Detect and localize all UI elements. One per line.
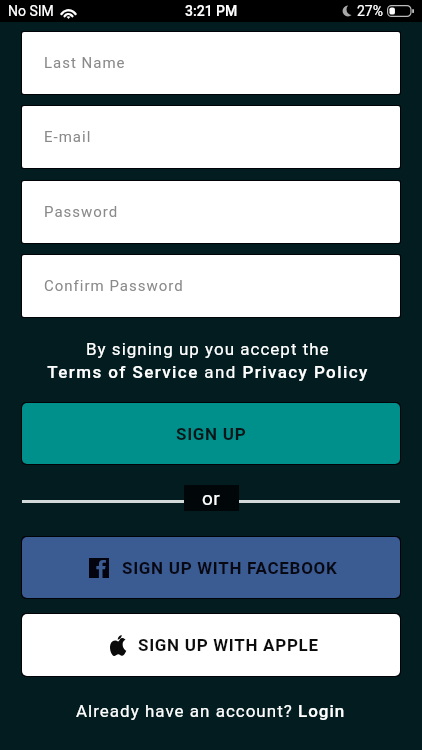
button[interactable]: Confirm Password	[22, 255, 400, 317]
staticText: SIGN UP WITH APPLE	[138, 635, 319, 655]
staticText: SIGN UP WITH FACEBOOK	[122, 558, 338, 578]
button[interactable]: Already have an account? Login	[76, 701, 346, 721]
staticText: No SIM	[8, 3, 54, 19]
button[interactable]: SIGN UP WITH FACEBOOK	[22, 537, 400, 598]
staticText: By signing up you accept the	[86, 339, 330, 359]
staticText: or	[202, 487, 221, 509]
button[interactable]: Password	[22, 181, 400, 243]
staticText: Password	[44, 203, 119, 221]
staticText: SIGN UP	[176, 424, 247, 444]
button[interactable]: Terms of Service and Privacy Policy	[47, 362, 369, 382]
staticText: 3:21 PM	[185, 3, 238, 19]
button[interactable]: SIGN UP WITH APPLE	[22, 614, 400, 676]
button[interactable]: E-mail	[22, 106, 400, 168]
button[interactable]: SIGN UP	[22, 403, 400, 464]
staticText: 27%	[357, 3, 383, 19]
staticText: Confirm Password	[44, 277, 184, 295]
button[interactable]: Last Name	[22, 32, 400, 94]
staticText: E-mail	[44, 128, 92, 146]
staticText: Last Name	[44, 54, 126, 72]
